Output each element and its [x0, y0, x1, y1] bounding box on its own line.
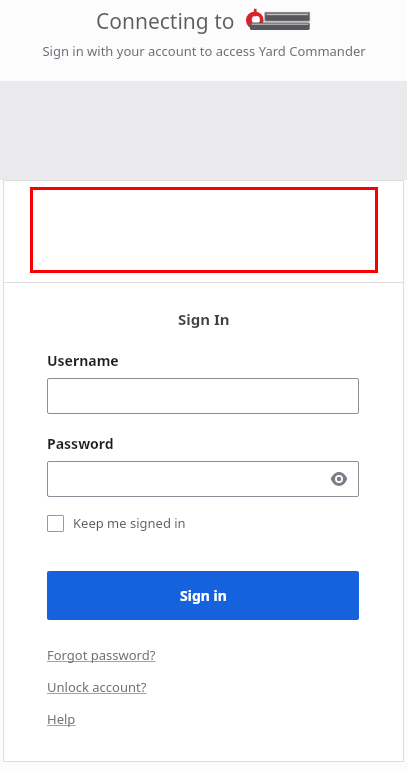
button[interactable]: Show password: [328, 468, 350, 490]
staticText: Help: [47, 710, 76, 728]
staticText: Sign in with your account to access Yard…: [42, 42, 366, 60]
button[interactable]: Keep me signed in: [47, 514, 186, 532]
staticText: Connecting to: [96, 7, 235, 36]
staticText: Sign in: [180, 586, 227, 605]
staticText: Sign In: [178, 309, 230, 329]
button[interactable]: Help: [47, 710, 76, 728]
button[interactable]: Sign in: [47, 571, 359, 620]
staticText: Forgot password?: [47, 646, 156, 664]
staticText: Username: [47, 351, 119, 370]
button[interactable]: [47, 378, 359, 414]
staticText: Keep me signed in: [73, 514, 186, 532]
button[interactable]: Forgot password?: [47, 646, 156, 664]
other: Yard Commander logo: [245, 11, 311, 33]
button[interactable]: Unlock account?: [47, 678, 147, 696]
button[interactable]: Show password: [47, 461, 359, 497]
staticText: Password: [47, 434, 114, 453]
staticText: Unlock account?: [47, 678, 147, 696]
